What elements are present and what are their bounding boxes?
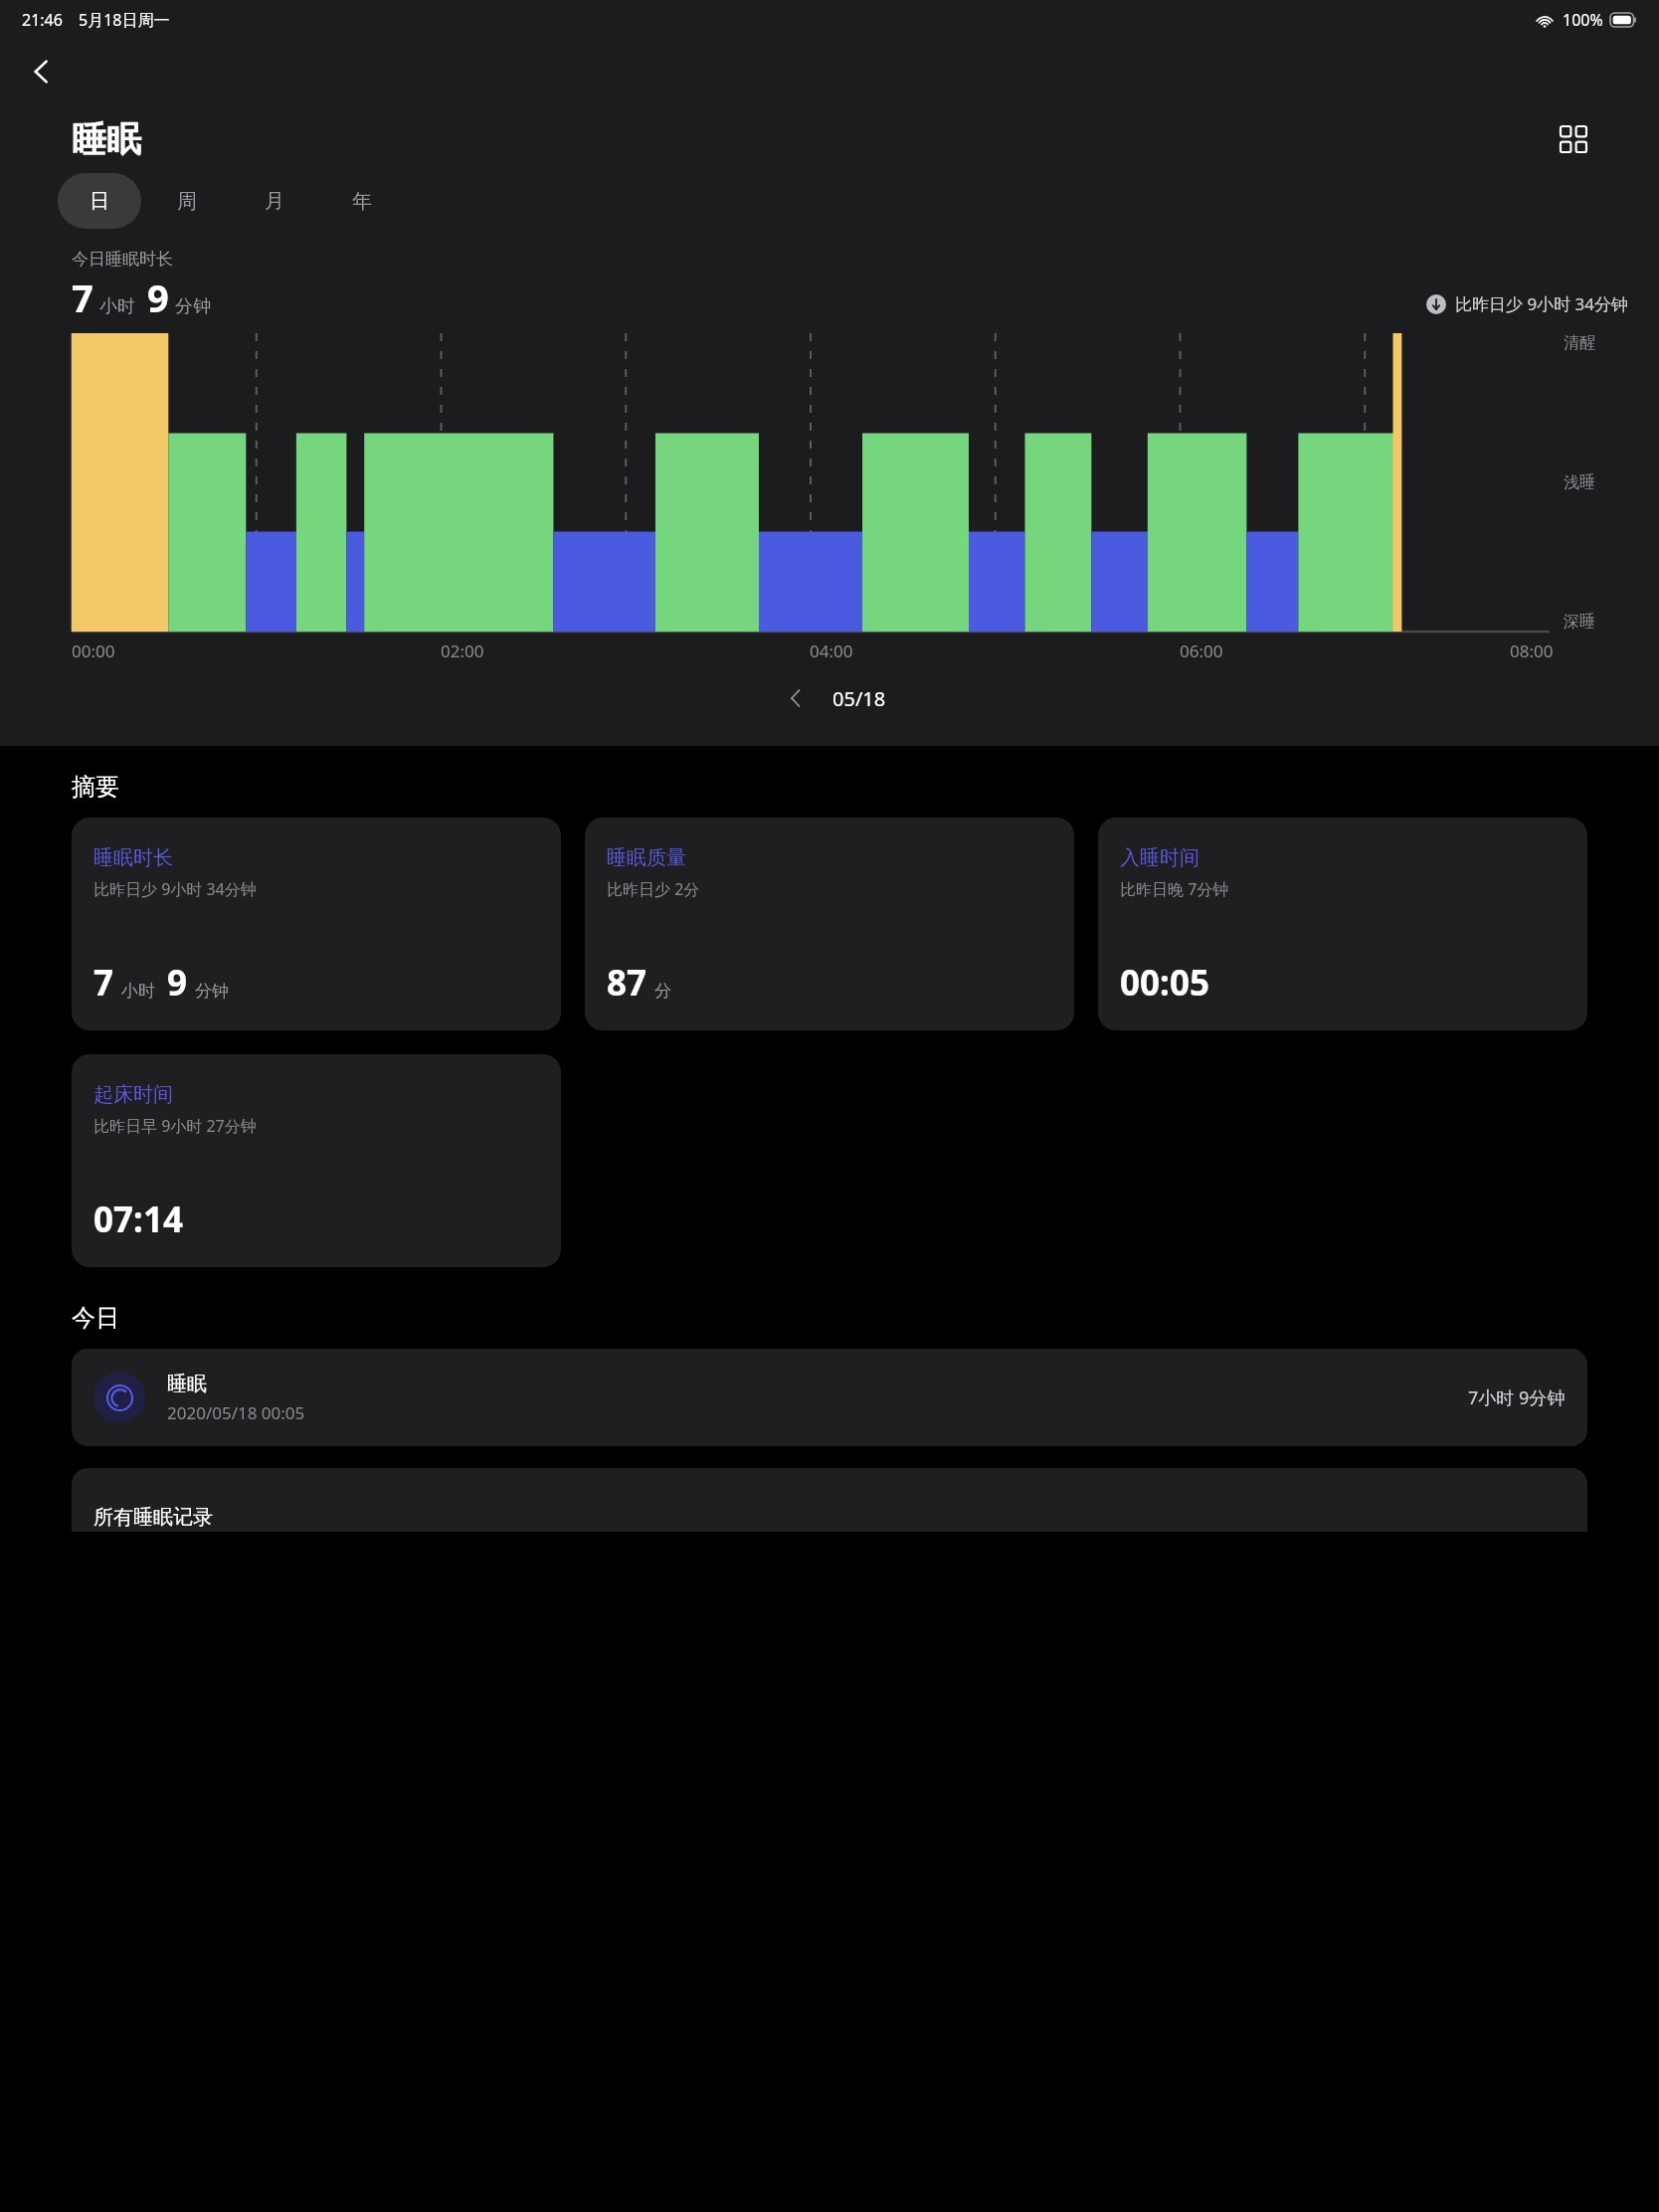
staticText: 今日	[72, 1303, 119, 1333]
staticText: 08:00	[1510, 640, 1554, 662]
staticText: 9	[147, 272, 169, 323]
staticText: 深睡	[1564, 612, 1595, 632]
staticText: 00:05	[1120, 959, 1209, 1007]
button[interactable]: 周	[145, 173, 229, 229]
staticText: 7	[72, 272, 93, 323]
button[interactable]: 入睡时间	[1098, 818, 1587, 1030]
staticText: 分钟	[175, 295, 211, 318]
staticText: 睡眠	[167, 1372, 207, 1396]
staticText: 所有睡眠记录	[93, 1505, 213, 1530]
staticText: 小时	[99, 295, 135, 318]
staticText: 睡眠时长	[93, 845, 173, 870]
button[interactable]: 年	[320, 173, 404, 229]
staticText: 清醒	[1564, 333, 1595, 353]
staticText: 今日睡眠时长	[72, 249, 173, 270]
staticText: 比昨日少 2分	[607, 878, 700, 900]
staticText: 21:46	[22, 9, 63, 31]
staticText: 00:00	[72, 640, 115, 662]
staticText: 04:00	[810, 640, 853, 662]
staticText: 87	[607, 959, 647, 1007]
button[interactable]: Back	[14, 44, 70, 99]
staticText: 分钟	[195, 981, 229, 1002]
button[interactable]: 月	[233, 173, 316, 229]
staticText: 06:00	[1180, 640, 1223, 662]
staticText: 小时	[121, 981, 155, 1002]
button[interactable]: 起床时间	[72, 1054, 561, 1267]
staticText: 比昨日少 9小时 34分钟	[1455, 292, 1629, 315]
staticText: 2020/05/18 00:05	[167, 1401, 305, 1424]
staticText: 比昨日少 9小时 34分钟	[93, 878, 257, 900]
staticText: 年	[352, 189, 372, 214]
staticText: 周	[177, 189, 197, 214]
staticText: 浅睡	[1564, 472, 1595, 492]
staticText: 摘要	[72, 772, 119, 802]
staticText: 月	[265, 189, 284, 214]
staticText: 9	[167, 959, 188, 1007]
staticText: 比昨日早 9小时 27分钟	[93, 1115, 257, 1137]
staticText: 05/18	[832, 685, 886, 712]
staticText: 5月18日周一	[79, 9, 170, 31]
button[interactable]: 日	[58, 173, 141, 229]
staticText: 比昨日晚 7分钟	[1120, 878, 1229, 900]
button[interactable]: 睡眠时长	[72, 818, 561, 1030]
staticText: 日	[90, 189, 109, 214]
staticText: 02:00	[441, 640, 484, 662]
button[interactable]: Grid view	[1550, 115, 1597, 163]
staticText: 起床时间	[93, 1082, 173, 1107]
staticText: 入睡时间	[1120, 845, 1199, 870]
staticText: 7	[93, 959, 114, 1007]
staticText: 睡眠质量	[607, 845, 686, 870]
staticText: 睡眠	[72, 117, 141, 161]
button[interactable]: 睡眠	[72, 1349, 1587, 1446]
staticText: 07:14	[93, 1196, 183, 1243]
staticText: 100%	[1563, 9, 1603, 31]
button[interactable]: 所有睡眠记录	[72, 1468, 1587, 1532]
button[interactable]: Previous day	[773, 675, 819, 721]
button[interactable]: 睡眠质量	[585, 818, 1074, 1030]
staticText: 7小时 9分钟	[1468, 1385, 1566, 1410]
staticText: 分	[654, 981, 671, 1002]
